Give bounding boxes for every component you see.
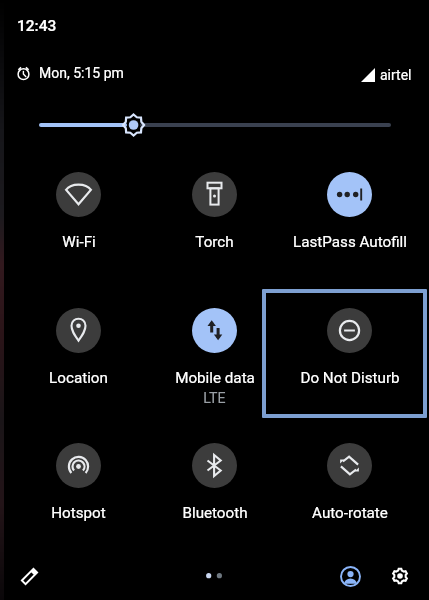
staticText: Do Not Disturb — [300, 369, 400, 387]
button[interactable]: Wi-Fi — [11, 154, 146, 283]
staticText: Wi-Fi — [62, 233, 96, 251]
button[interactable]: Mobile data — [147, 290, 282, 419]
button[interactable] — [36, 112, 394, 138]
button[interactable]: Edit — [14, 561, 44, 591]
staticText: LastPass Autofill — [293, 233, 407, 251]
staticText: Mobile data — [175, 369, 255, 387]
staticText: airtel — [380, 67, 412, 83]
button[interactable]: Location — [11, 290, 146, 419]
staticText: Auto-rotate — [312, 504, 388, 522]
button[interactable]: LastPass Autofill — [282, 154, 417, 283]
staticText: Torch — [195, 233, 234, 251]
button[interactable]: Settings — [385, 561, 415, 591]
button[interactable]: Hotspot — [11, 425, 146, 554]
button[interactable]: Bluetooth — [147, 425, 282, 554]
button[interactable]: Auto-rotate — [282, 425, 417, 554]
staticText: Hotspot — [51, 504, 106, 522]
staticText: Mon, 5:15 pm — [39, 65, 124, 81]
staticText: LTE — [203, 390, 226, 407]
button[interactable]: Torch — [147, 154, 282, 283]
button[interactable]: Do Not Disturb — [262, 289, 427, 418]
staticText: Location — [49, 369, 108, 387]
staticText: Bluetooth — [182, 504, 248, 522]
button[interactable]: User account — [335, 561, 365, 591]
staticText: 12:43 — [17, 17, 57, 35]
